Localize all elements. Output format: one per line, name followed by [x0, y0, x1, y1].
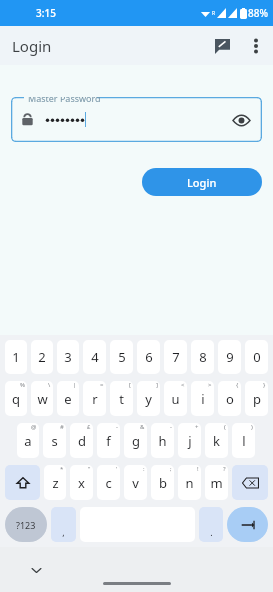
staticText: &: [140, 423, 145, 431]
button[interactable]: 6: [137, 340, 160, 374]
button[interactable]: f: [97, 423, 120, 458]
staticText: Master Password: [28, 97, 101, 104]
button[interactable]: n: [178, 465, 201, 500]
staticText: 5: [118, 348, 126, 366]
button[interactable]: i: [191, 381, 214, 416]
button[interactable]: p: [245, 381, 268, 416]
button[interactable]: t: [110, 381, 133, 416]
staticText: £: [87, 423, 91, 431]
button[interactable]: Show password: [230, 109, 252, 131]
button[interactable]: d: [70, 423, 93, 458]
staticText: ]: [156, 381, 158, 389]
staticText: l: [242, 432, 246, 450]
staticText: [: [129, 381, 131, 389]
button[interactable]: 9: [218, 340, 241, 374]
staticText: .: [210, 526, 213, 538]
staticText: ): [251, 423, 253, 431]
button[interactable]: 3: [57, 340, 79, 374]
staticText: n: [185, 474, 194, 492]
staticText: k: [213, 432, 220, 450]
button[interactable]: r: [83, 381, 106, 416]
staticText: 9: [226, 348, 234, 366]
staticText: b: [159, 474, 167, 492]
staticText: Login: [12, 36, 52, 56]
button[interactable]: x: [70, 465, 93, 500]
staticText: }: [263, 381, 266, 389]
button[interactable]: u: [164, 381, 187, 416]
staticText: R: [212, 10, 216, 17]
staticText: ": [88, 465, 91, 473]
staticText: z: [52, 474, 59, 492]
button[interactable]: j: [178, 423, 201, 458]
staticText: !: [197, 465, 199, 473]
staticText: :: [143, 465, 145, 473]
button[interactable]: 7: [164, 340, 187, 374]
staticText: Login: [187, 175, 217, 190]
button[interactable]: s: [43, 423, 66, 458]
button[interactable]: 8: [191, 340, 214, 374]
button[interactable]: h: [151, 423, 174, 458]
staticText: x: [78, 474, 85, 492]
staticText: -: [116, 423, 118, 431]
staticText: *: [60, 465, 64, 473]
button[interactable]: ,: [51, 507, 76, 542]
staticText: 6: [145, 348, 153, 366]
staticText: d: [78, 432, 86, 450]
button[interactable]: w: [31, 381, 53, 416]
button[interactable]: g: [124, 423, 147, 458]
button[interactable]: a: [17, 423, 39, 458]
staticText: ?: [223, 465, 226, 473]
staticText: -: [170, 423, 172, 431]
button[interactable]: m: [205, 465, 228, 500]
button[interactable]: Hide keyboard: [26, 560, 46, 580]
staticText: p: [253, 390, 261, 408]
staticText: u: [171, 390, 180, 408]
staticText: 88%: [248, 6, 268, 20]
staticText: |: [73, 381, 77, 389]
button[interactable]: y: [137, 381, 160, 416]
button[interactable]: k: [205, 423, 228, 458]
button[interactable]: b: [151, 465, 174, 500]
staticText: 4: [91, 348, 99, 366]
staticText: o: [226, 390, 234, 408]
button[interactable]: Master Password: [11, 97, 262, 142]
staticText: j: [188, 432, 192, 450]
staticText: @: [31, 423, 37, 431]
button[interactable]: q: [5, 381, 27, 416]
staticText: h: [158, 432, 167, 450]
button[interactable]: e: [57, 381, 79, 416]
staticText: e: [64, 390, 72, 408]
button[interactable]: 1: [5, 340, 27, 374]
button[interactable]: .: [199, 507, 223, 542]
staticText: s: [51, 432, 58, 450]
button[interactable]: Enter: [227, 507, 268, 542]
button[interactable]: l: [232, 423, 255, 458]
button[interactable]: o: [218, 381, 241, 416]
button[interactable]: Login: [142, 168, 262, 196]
button[interactable]: 0: [245, 340, 268, 374]
staticText: q: [12, 390, 20, 408]
staticText: c: [105, 474, 112, 492]
button[interactable]: Backspace: [232, 465, 268, 500]
button[interactable]: Shift: [5, 465, 40, 500]
staticText: v: [132, 474, 139, 492]
staticText: 3:15: [36, 6, 56, 20]
button[interactable]: c: [97, 465, 120, 500]
staticText: =: [100, 381, 104, 389]
staticText: (: [224, 423, 226, 431]
button[interactable]: z: [44, 465, 66, 500]
button[interactable]: Send feedback: [205, 29, 239, 63]
button[interactable]: More options: [239, 29, 273, 63]
button[interactable]: v: [124, 465, 147, 500]
staticText: 8: [199, 348, 207, 366]
staticText: >: [208, 381, 212, 389]
staticText: w: [37, 390, 48, 408]
button[interactable]: ?123: [5, 507, 47, 542]
button[interactable]: 2: [31, 340, 53, 374]
staticText: 0: [253, 348, 261, 366]
button[interactable]: 5: [110, 340, 133, 374]
button[interactable]: 4: [83, 340, 106, 374]
staticText: <: [181, 381, 185, 389]
staticText: i: [201, 390, 205, 408]
